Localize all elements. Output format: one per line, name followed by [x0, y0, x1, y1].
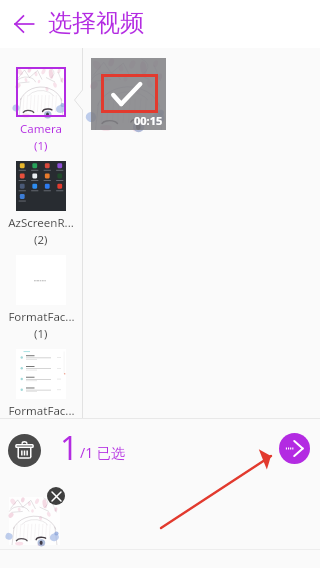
button[interactable]: 00:15 [91, 58, 166, 130]
button[interactable]: FormatFac... [0, 331, 82, 419]
button[interactable]: FormatFac... [0, 237, 82, 347]
button[interactable]: Camera [0, 49, 82, 159]
staticText: FormatFac... [8, 403, 75, 419]
staticText: (1) [34, 138, 48, 154]
button[interactable]: AzScreenR... [0, 143, 82, 253]
button[interactable]: Back [0, 0, 48, 48]
staticText: 选择视频 [48, 8, 144, 38]
staticText: (2) [34, 232, 48, 248]
staticText: FormatFac... [8, 309, 75, 325]
staticText: /1 已选 [80, 443, 125, 462]
staticText: (1) [34, 326, 48, 342]
staticText: AzScreenR... [8, 215, 74, 231]
staticText: 1 [60, 426, 79, 464]
button[interactable]: Delete [8, 434, 41, 467]
staticText: Camera [20, 121, 62, 137]
button[interactable]: Next [279, 433, 310, 464]
button[interactable]: Remove [47, 487, 65, 505]
staticText: 00:15 [134, 113, 163, 128]
